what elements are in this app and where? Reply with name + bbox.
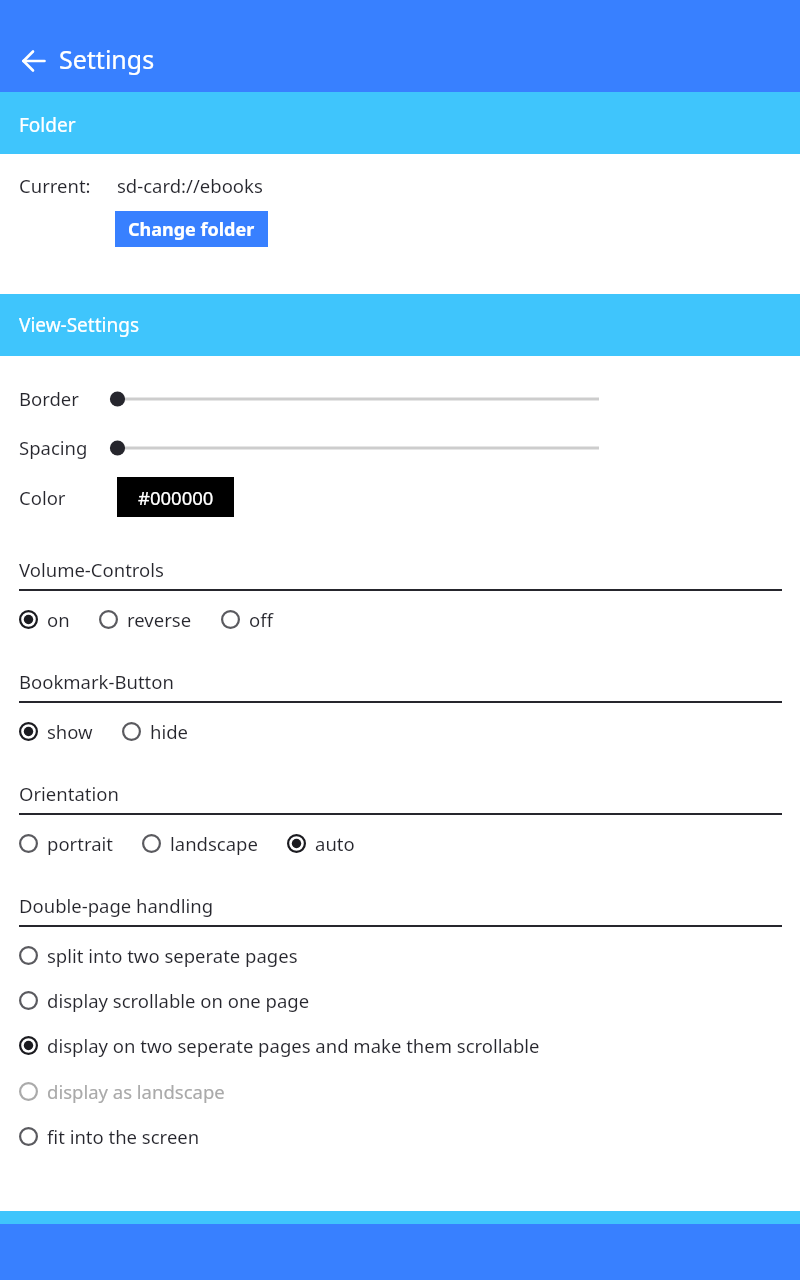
staticText: Border	[19, 386, 79, 411]
staticText: #000000	[138, 485, 214, 510]
staticText: Spacing	[19, 435, 88, 460]
staticText: display on two seperate pages and make t…	[47, 1033, 540, 1058]
button[interactable]: auto	[287, 825, 355, 861]
button[interactable]: Spacing slider	[110, 434, 600, 462]
staticText: Change folder	[128, 217, 255, 242]
button[interactable]: portrait	[19, 825, 113, 861]
staticText: show	[47, 719, 93, 744]
staticText: Folder	[19, 112, 76, 138]
button[interactable]: Pick colour	[117, 477, 234, 517]
button[interactable]: off	[221, 601, 273, 637]
staticText: Bookmark-Button	[19, 669, 174, 694]
staticText: display as landscape	[47, 1079, 225, 1104]
staticText: Current:	[19, 173, 91, 198]
staticText: Orientation	[19, 781, 119, 806]
staticText: Double-page handling	[19, 893, 214, 918]
button[interactable]: Change folder	[115, 211, 268, 247]
staticText: reverse	[127, 607, 192, 632]
button[interactable]: display as landscape	[0, 1069, 800, 1113]
button[interactable]: on	[19, 601, 70, 637]
staticText: View-Settings	[19, 312, 139, 338]
button[interactable]: display scrollable on one page	[0, 978, 800, 1022]
staticText: off	[249, 607, 273, 632]
button[interactable]: Back	[13, 40, 55, 82]
staticText: Volume-Controls	[19, 557, 164, 582]
button[interactable]: show	[19, 713, 93, 749]
staticText: sd-card://ebooks	[117, 173, 263, 198]
button[interactable]: hide	[122, 713, 189, 749]
button[interactable]: fit into the screen	[0, 1114, 800, 1158]
staticText: on	[47, 607, 70, 632]
staticText: landscape	[170, 831, 258, 856]
button[interactable]: split into two seperate pages	[0, 933, 800, 977]
staticText: display scrollable on one page	[47, 988, 310, 1013]
staticText: split into two seperate pages	[47, 943, 298, 968]
button[interactable]: Border slider	[110, 385, 600, 413]
staticText: Settings	[59, 42, 155, 76]
button[interactable]: display on two seperate pages and make t…	[0, 1023, 800, 1067]
button[interactable]: reverse	[99, 601, 192, 637]
staticText: auto	[315, 831, 355, 856]
button[interactable]: landscape	[142, 825, 258, 861]
staticText: fit into the screen	[47, 1124, 200, 1149]
staticText: Color	[19, 485, 66, 510]
staticText: portrait	[47, 831, 113, 856]
staticText: hide	[150, 719, 189, 744]
